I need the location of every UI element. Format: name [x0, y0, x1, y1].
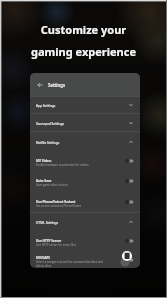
button[interactable]: App Settings — [36, 97, 133, 113]
button[interactable]: Netflix Settings — [36, 132, 133, 151]
button[interactable]: Use Phone/Intent Variant — [36, 191, 134, 212]
staticText: Save game after choices — [36, 183, 68, 187]
staticText: Set screen variant to Phone/Intent — [36, 204, 82, 208]
button[interactable]: Toggle Use HTTP Server — [125, 238, 134, 244]
button[interactable]: MV/GAPI — [36, 251, 134, 268]
staticText: MV/GAPI — [36, 256, 50, 260]
staticText: MV Video: — [36, 159, 52, 163]
staticText: Use HTTP server for some files — [36, 243, 77, 247]
button[interactable]: Toggle Use Phone/Intent Variant — [125, 199, 134, 205]
staticText: Settings — [48, 82, 66, 88]
staticText: Use Phone/Intent Variant — [36, 200, 76, 204]
staticText: Select a wrapper variant for common Inte… — [36, 260, 104, 268]
staticText: Gamepad Settings — [36, 122, 65, 126]
staticText: Use HTTP Server — [36, 239, 62, 243]
button[interactable]: Use HTTP Server — [36, 231, 134, 251]
button[interactable]: HTML Settings — [36, 213, 133, 231]
staticText: Netflix Settings — [36, 141, 60, 145]
staticText: Enable hardware acceleration for videos — [36, 163, 89, 167]
staticText: HTML Settings — [36, 221, 59, 225]
button[interactable]: Toggle Auto Save — [125, 178, 134, 184]
button[interactable]: Toggle MV/GAPI — [125, 257, 134, 263]
button[interactable]: MV Video: — [36, 151, 134, 171]
button[interactable]: Auto Save — [36, 171, 134, 191]
other: Back — [37, 82, 43, 88]
button[interactable]: Gamepad Settings — [36, 114, 133, 131]
staticText: App Settings — [36, 104, 56, 108]
staticText: gaming experience — [0, 44, 167, 59]
staticText: Auto Save — [36, 179, 52, 183]
button[interactable]: Back — [30, 73, 140, 96]
staticText: Customize your — [0, 22, 167, 37]
button[interactable]: Toggle MV Video: — [125, 158, 134, 164]
